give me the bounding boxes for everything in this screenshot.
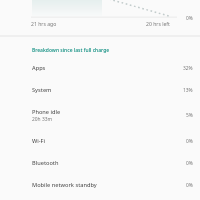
staticText: 20h 33m [32,116,53,123]
button[interactable]: Wi-Fi, 0% of battery [0,130,200,152]
staticText: System [32,86,52,94]
button[interactable]: Phone idle, 5% of battery [0,101,200,130]
staticText: 0% [186,15,193,22]
staticText: 5% [186,112,193,119]
staticText: Breakdown since last full charge [32,47,110,54]
staticText: 32% [183,65,193,72]
staticText: Phone idle [32,108,61,116]
staticText: 0% [186,138,193,145]
staticText: Wi-Fi [32,137,46,145]
staticText: Bluetooth [32,159,59,167]
button[interactable]: Bluetooth, 0% of battery [0,152,200,174]
button[interactable]: Apps, 32% of battery [0,57,200,79]
staticText: 0% [186,182,193,189]
staticText: 21 hrs ago [31,21,57,28]
staticText: 0% [186,160,193,167]
staticText: 20 hrs left [146,21,170,28]
staticText: Mobile network standby [32,181,97,189]
button[interactable]: System, 13% of battery [0,79,200,101]
staticText: Apps [32,64,46,72]
staticText: 13% [183,87,193,94]
button[interactable]: Mobile network standby, 0% of battery [0,174,200,196]
